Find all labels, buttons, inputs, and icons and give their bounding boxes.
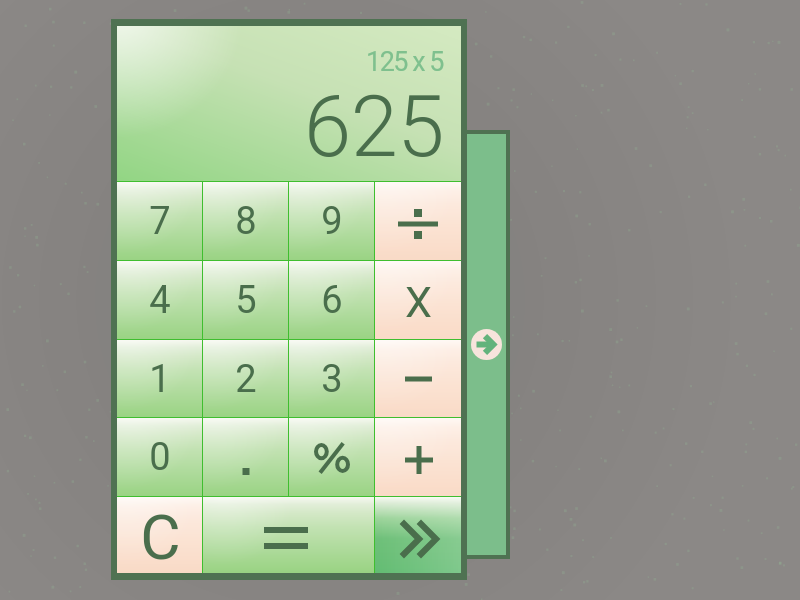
button[interactable]: Equals — [203, 497, 375, 573]
button[interactable]: 2 — [203, 340, 289, 418]
staticText: 7 — [149, 199, 171, 244]
staticText: 3 — [321, 357, 343, 402]
button[interactable]: Divide — [375, 182, 461, 261]
button[interactable]: 8 — [203, 182, 289, 261]
button[interactable]: 3 — [289, 340, 375, 418]
button[interactable] — [289, 418, 375, 497]
staticText: 5 — [235, 278, 257, 323]
staticText: C — [140, 501, 181, 574]
staticText: 625 — [304, 77, 444, 177]
staticText: 9 — [321, 199, 343, 244]
button[interactable]: Subtract — [375, 340, 461, 418]
button[interactable]: 7 — [117, 182, 203, 261]
button[interactable]: 4 — [117, 261, 203, 340]
button[interactable]: More functions — [375, 497, 461, 573]
button[interactable]: 1 — [117, 340, 203, 418]
button[interactable]: Open side panel — [461, 130, 510, 559]
staticText: 4 — [149, 278, 171, 323]
button[interactable]: 0 — [117, 418, 203, 497]
staticText: 1 — [149, 357, 171, 402]
button[interactable]: Multiply — [375, 261, 461, 340]
button[interactable]: 9 — [289, 182, 375, 261]
button[interactable]: C — [117, 497, 203, 573]
button[interactable]: Add — [375, 418, 461, 497]
staticText: X — [405, 277, 432, 327]
staticText: 0 — [149, 435, 171, 480]
button[interactable]: 5 — [203, 261, 289, 340]
staticText: 125 x 5 — [366, 46, 443, 78]
staticText: 6 — [321, 278, 343, 323]
staticText: 2 — [235, 357, 257, 402]
button[interactable]: 6 — [289, 261, 375, 340]
button[interactable] — [203, 418, 289, 497]
staticText: 8 — [235, 199, 257, 244]
